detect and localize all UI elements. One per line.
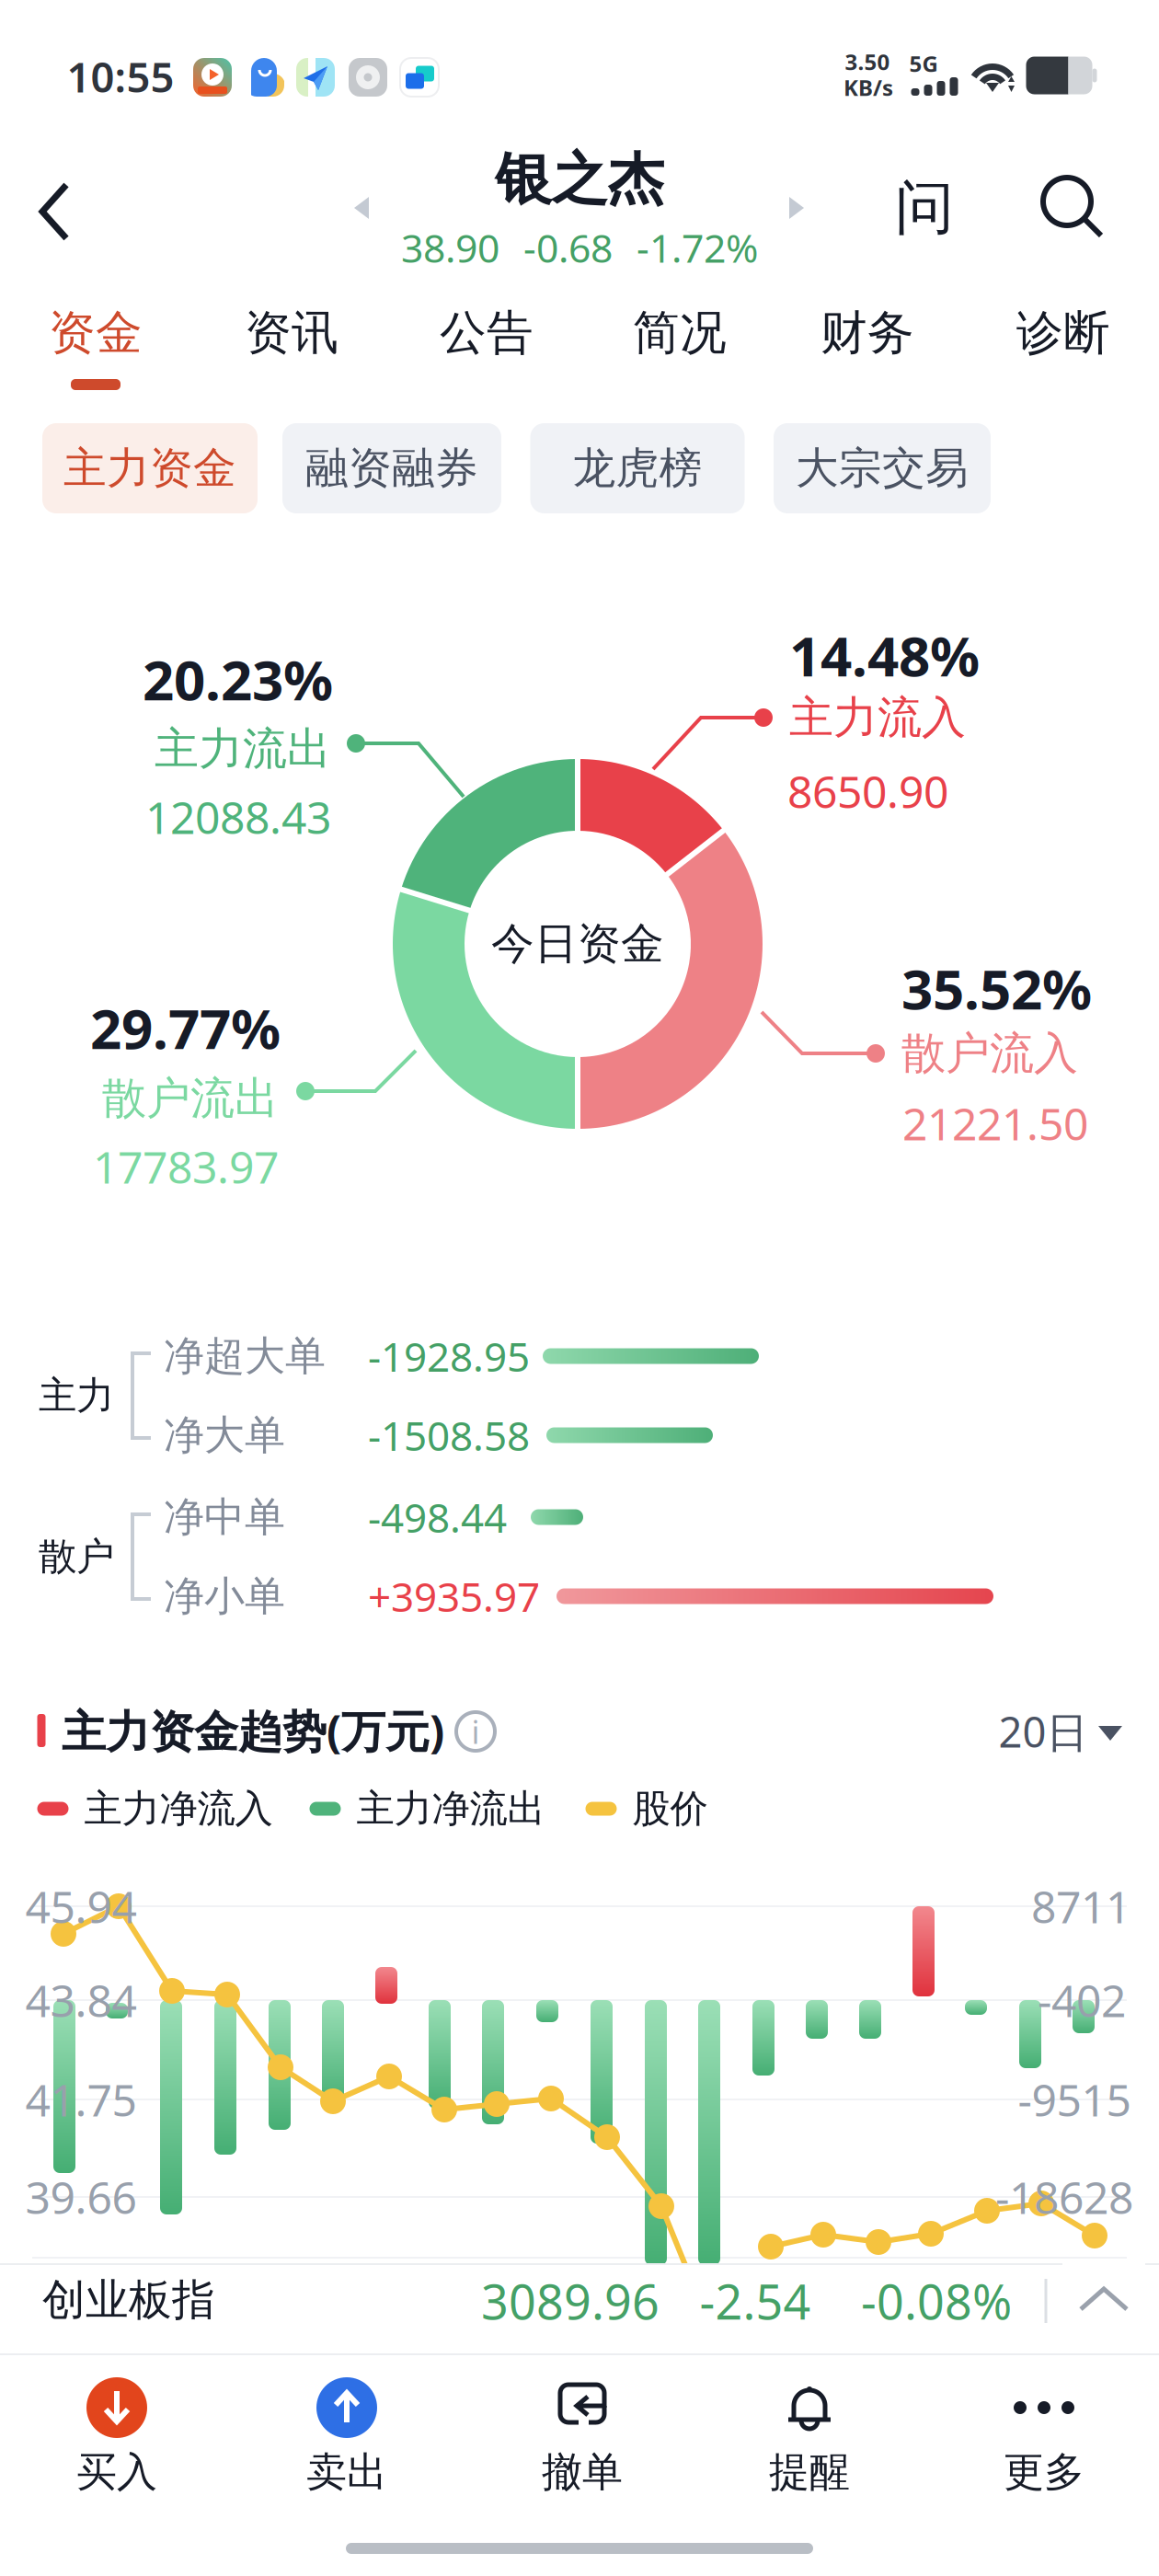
staticText: 45.94 bbox=[25, 1877, 137, 1935]
staticText: 净小单 bbox=[164, 1571, 285, 1621]
staticText: 买入 bbox=[76, 2447, 157, 2497]
staticText: 8650.90 bbox=[787, 762, 948, 820]
staticText: 主力净流入 bbox=[84, 1785, 273, 1832]
staticText: 更多 bbox=[1004, 2447, 1084, 2497]
staticText: 公告 bbox=[440, 304, 534, 362]
staticText: 14.48% bbox=[789, 618, 980, 692]
staticText: 12088.43 bbox=[145, 788, 331, 846]
staticText: -1508.58 bbox=[368, 1408, 530, 1462]
staticText: -0.08% bbox=[861, 2269, 1012, 2333]
staticText: 29.77% bbox=[90, 991, 281, 1064]
staticText: 散户流入 bbox=[901, 1026, 1078, 1081]
staticText: -1.72% bbox=[637, 221, 758, 274]
button[interactable]: 买入 bbox=[1, 2360, 233, 2535]
staticText: KB/s bbox=[843, 73, 893, 102]
staticText: 散户 bbox=[39, 1533, 114, 1580]
staticText: 35.52% bbox=[901, 951, 1092, 1025]
staticText: 21221.50 bbox=[902, 1094, 1088, 1153]
button[interactable]: 主力资金 bbox=[42, 423, 258, 513]
staticText: +3935.97 bbox=[368, 1569, 540, 1623]
button[interactable]: 撤单 bbox=[466, 2360, 698, 2535]
staticText: 3.50 bbox=[845, 47, 890, 76]
staticText: 主力净流出 bbox=[356, 1785, 545, 1832]
button[interactable]: 融资融券 bbox=[282, 423, 501, 513]
staticText: -0.68 bbox=[523, 221, 613, 274]
button[interactable]: 简况 bbox=[592, 294, 767, 412]
button[interactable]: 20日 bbox=[973, 1693, 1159, 1770]
staticText: 撤单 bbox=[542, 2447, 623, 2497]
button[interactable]: 龙虎榜 bbox=[530, 423, 745, 513]
staticText: 净中单 bbox=[164, 1492, 285, 1542]
staticText: 资讯 bbox=[245, 304, 339, 362]
button[interactable]: 资金 bbox=[8, 294, 183, 412]
staticText: 资金 bbox=[49, 304, 143, 362]
staticText: 诊断 bbox=[1016, 304, 1110, 362]
button[interactable]: Search bbox=[1023, 154, 1124, 264]
button[interactable]: 诊断 bbox=[976, 294, 1151, 412]
staticText: 主力流入 bbox=[789, 690, 966, 745]
button[interactable]: 大宗交易 bbox=[774, 423, 991, 513]
staticText: 股价 bbox=[632, 1785, 708, 1832]
staticText: 龙虎榜 bbox=[573, 442, 702, 495]
staticText: 创业板指 bbox=[42, 2274, 215, 2326]
staticText: 今日资金 bbox=[491, 918, 664, 970]
staticText: 3089.96 bbox=[481, 2269, 660, 2333]
button[interactable]: 更多 bbox=[928, 2360, 1159, 2535]
staticText: 散户流出 bbox=[102, 1071, 279, 1126]
staticText: 8711 bbox=[1031, 1877, 1130, 1935]
button[interactable]: 财务 bbox=[780, 294, 955, 412]
staticText: 提醒 bbox=[769, 2447, 850, 2497]
staticText: 融资融券 bbox=[305, 442, 478, 495]
staticText: 主力资金 bbox=[63, 442, 236, 495]
staticText: -498.44 bbox=[368, 1490, 507, 1544]
staticText: -2.54 bbox=[700, 2269, 811, 2333]
button[interactable]: Back bbox=[28, 161, 134, 281]
button[interactable]: 提醒 bbox=[694, 2360, 925, 2535]
staticText: 净大单 bbox=[164, 1410, 285, 1460]
button[interactable]: 卖出 bbox=[231, 2360, 463, 2535]
staticText: 20.23% bbox=[143, 642, 333, 716]
staticText: 银之杰 bbox=[495, 145, 664, 214]
staticText: 简况 bbox=[633, 304, 727, 362]
staticText: 41.75 bbox=[25, 2070, 137, 2129]
staticText: 大宗交易 bbox=[796, 442, 969, 495]
staticText: 财务 bbox=[820, 304, 914, 362]
staticText: -1928.95 bbox=[368, 1329, 530, 1383]
staticText: 净超大单 bbox=[164, 1331, 326, 1381]
staticText: -18628 bbox=[995, 2168, 1133, 2226]
button[interactable]: 资讯 bbox=[204, 294, 379, 412]
staticText: 43.84 bbox=[25, 1971, 137, 2029]
staticText: 5G bbox=[909, 49, 938, 78]
staticText: 10:55 bbox=[67, 49, 174, 104]
staticText: 38.90 bbox=[401, 221, 499, 274]
staticText: 39.66 bbox=[25, 2168, 137, 2226]
staticText: -9515 bbox=[1018, 2070, 1131, 2129]
staticText: 主力 bbox=[39, 1372, 114, 1419]
staticText: -402 bbox=[1038, 1971, 1126, 2029]
staticText: 主力资金趋势(万元) bbox=[62, 1701, 444, 1760]
staticText: i bbox=[471, 1710, 480, 1753]
staticText: 17783.97 bbox=[93, 1137, 279, 1196]
button[interactable]: Ask bbox=[874, 153, 975, 263]
button[interactable]: Collapse bbox=[1062, 2260, 1145, 2342]
staticText: 主力流出 bbox=[155, 722, 331, 776]
staticText: 20日 bbox=[998, 1704, 1088, 1759]
button[interactable]: 公告 bbox=[399, 294, 574, 412]
staticText: 问 bbox=[895, 172, 954, 244]
staticText: 卖出 bbox=[306, 2447, 387, 2497]
